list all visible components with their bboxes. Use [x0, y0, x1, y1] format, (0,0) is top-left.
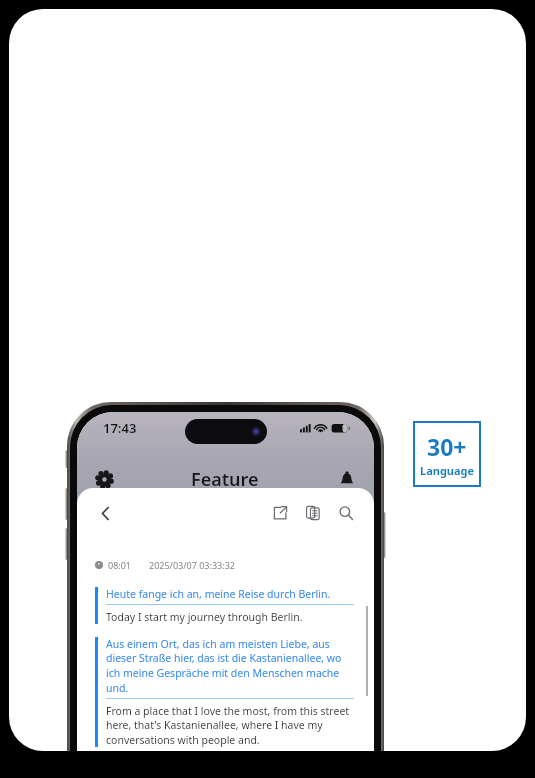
staticText: Language — [420, 463, 475, 478]
staticText: 30+ — [427, 431, 467, 462]
staticText: 17:43 — [103, 419, 137, 437]
staticText: Aus einem Ort, das ich am meisten Liebe,… — [106, 637, 354, 695]
button[interactable]: Search — [332, 499, 360, 527]
staticText: From a place that I love the most, from … — [106, 704, 354, 747]
staticText: Today I start my journey through Berlin. — [106, 610, 303, 624]
button[interactable]: 30+ — [414, 422, 480, 486]
button[interactable]: Heute fange ich an, meine Reise durch Be… — [95, 587, 354, 624]
button[interactable]: Notifications — [334, 466, 360, 492]
button[interactable]: Aus einem Ort, das ich am meisten Liebe,… — [95, 637, 354, 747]
staticText: 08:01 — [108, 559, 132, 571]
staticText: Feature — [191, 467, 259, 492]
button[interactable]: Copy — [299, 499, 327, 527]
staticText: 2025/03/07 03:33:32 — [149, 559, 235, 571]
staticText: Heute fange ich an, meine Reise durch Be… — [106, 587, 331, 601]
button[interactable]: Settings — [91, 466, 117, 492]
button[interactable]: Back — [91, 499, 119, 527]
button[interactable]: Share — [266, 499, 294, 527]
